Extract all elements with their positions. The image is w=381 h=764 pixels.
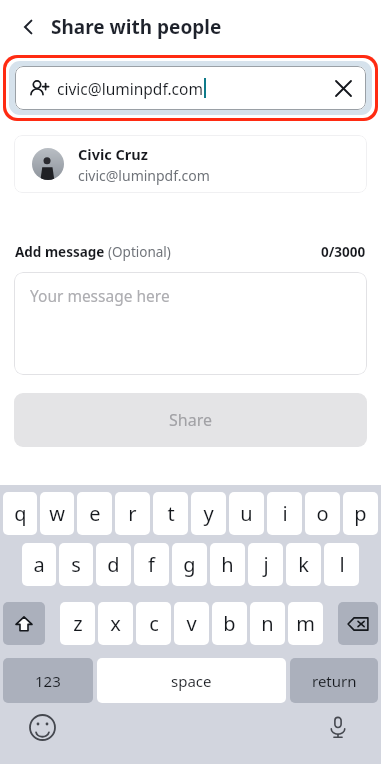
button[interactable]: g [172, 543, 207, 586]
staticText: t [167, 500, 175, 527]
button[interactable]: j [248, 543, 283, 586]
staticText: Share with people [51, 14, 222, 40]
button[interactable]: o [305, 492, 340, 535]
button[interactable]: n [250, 602, 285, 645]
staticText: g [183, 551, 196, 578]
button[interactable]: p [343, 492, 378, 535]
button[interactable]: Your message here [14, 272, 367, 375]
staticText: m [296, 610, 315, 637]
staticText: 123 [35, 671, 61, 691]
button[interactable]: z [60, 602, 95, 645]
staticText: c [149, 610, 159, 637]
button[interactable]: x [98, 602, 133, 645]
button[interactable]: m [288, 602, 323, 645]
button[interactable]: 123 [3, 658, 93, 703]
button[interactable]: h [210, 543, 245, 586]
button[interactable]: r [115, 492, 150, 535]
staticText: e [89, 500, 101, 527]
button[interactable]: t [153, 492, 188, 535]
staticText: x [110, 610, 121, 637]
button[interactable]: Voice input [322, 711, 354, 743]
staticText: Your message here [30, 285, 170, 306]
button[interactable]: v [174, 602, 209, 645]
staticText: (Optional) [108, 243, 171, 261]
staticText: 0/3000 [321, 243, 366, 261]
button[interactable]: l [324, 543, 359, 586]
button[interactable]: q [3, 492, 37, 535]
button[interactable]: space [97, 658, 286, 703]
button[interactable]: u [229, 492, 264, 535]
staticText: s [71, 551, 81, 578]
button[interactable]: Back [12, 10, 46, 44]
staticText: k [298, 551, 309, 578]
staticText: o [316, 500, 329, 527]
staticText: h [221, 551, 234, 578]
staticText: a [33, 551, 45, 578]
button[interactable]: Share [14, 393, 367, 447]
staticText: z [73, 610, 83, 637]
button[interactable]: f [134, 543, 169, 586]
button[interactable]: Clear text [328, 73, 358, 103]
staticText: n [261, 610, 274, 637]
staticText: p [354, 500, 367, 527]
staticText: b [223, 610, 236, 637]
staticText: civic@luminpdf.com [78, 166, 210, 185]
staticText: r [128, 500, 137, 527]
button[interactable]: i [267, 492, 302, 535]
button[interactable]: d [96, 543, 131, 586]
staticText: q [14, 500, 27, 527]
staticText: Add message [15, 243, 108, 261]
staticText: return [312, 671, 357, 691]
staticText: w [49, 500, 65, 527]
staticText: j [263, 551, 269, 578]
staticText: d [107, 551, 120, 578]
staticText: Share [169, 409, 212, 431]
button[interactable]: civic@luminpdf.com [15, 66, 366, 110]
staticText: Civic Cruz [78, 144, 148, 164]
button[interactable]: e [77, 492, 112, 535]
button[interactable]: return [290, 658, 378, 703]
button[interactable]: b [212, 602, 247, 645]
staticText: v [186, 610, 197, 637]
staticText: i [282, 500, 288, 527]
staticText: f [148, 551, 155, 578]
staticText: space [171, 671, 212, 691]
button[interactable]: c [136, 602, 171, 645]
staticText: l [339, 551, 345, 578]
button[interactable]: Emoji [26, 711, 58, 743]
button[interactable]: Shift [3, 602, 45, 645]
staticText: u [240, 500, 253, 527]
button[interactable]: a [22, 543, 56, 586]
button[interactable]: k [286, 543, 321, 586]
button[interactable]: Backspace [338, 602, 378, 645]
staticText: y [203, 500, 214, 527]
button[interactable]: w [40, 492, 74, 535]
button[interactable]: y [191, 492, 226, 535]
button[interactable]: s [59, 543, 93, 586]
staticText: civic@luminpdf.com [57, 78, 203, 99]
button[interactable]: Civic Cruz [14, 135, 367, 193]
